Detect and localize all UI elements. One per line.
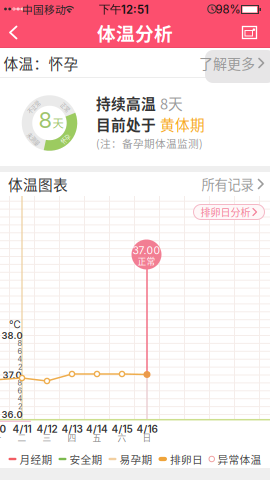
staticText: 黄体期 [160, 113, 205, 135]
staticText: 正常 [60, 103, 70, 111]
staticText: 排卵日分析 [200, 205, 250, 219]
staticText: 所有记录 [201, 174, 253, 194]
staticText: 4/11 [12, 423, 31, 435]
staticText: 98% [215, 3, 240, 16]
staticText: 4/16 [136, 423, 157, 435]
staticText: 异常体温 [217, 451, 261, 467]
staticText: 6 [17, 347, 22, 356]
staticText: 38.0 [1, 330, 22, 341]
button[interactable]: 所有记录 [201, 174, 264, 194]
staticText: 不正常 [26, 103, 41, 111]
staticText: 4/14 [86, 423, 108, 435]
staticText: 了解更多 [199, 53, 255, 73]
staticText: 月经期 [19, 451, 52, 467]
staticText: 排卵日 [170, 451, 203, 467]
staticText: 一 [0, 431, 1, 444]
staticText: 正常 [137, 255, 155, 267]
staticText: 日 [142, 431, 151, 444]
staticText: 下午12:51 [99, 2, 149, 17]
staticText: 三 [42, 431, 51, 444]
staticText: 安全期 [69, 451, 102, 467]
staticText: 五 [92, 431, 101, 444]
staticText: 体温：怀孕 [3, 52, 78, 74]
staticText: 持续高温 [96, 92, 156, 114]
staticText: 0 [0, 423, 6, 435]
staticText: 易孕期 [119, 451, 152, 467]
staticText: 8 [38, 107, 52, 133]
staticText: 六 [117, 431, 126, 444]
staticText: 未测量 [26, 135, 41, 143]
staticText: 4 [17, 355, 22, 364]
staticText: 4/15 [111, 423, 132, 435]
staticText: 体温图表 [8, 173, 68, 195]
staticText: 中国移动 [22, 1, 66, 17]
button[interactable]: 排卵日分析 [193, 204, 264, 219]
staticText: 天 [52, 114, 63, 131]
staticText: 37.00 [132, 244, 160, 257]
staticText: 4/12 [36, 423, 57, 435]
staticText: 4 [17, 394, 22, 403]
staticText: 8天 [160, 92, 183, 114]
staticText: 二 [17, 431, 26, 444]
staticText: 8 [17, 339, 22, 348]
staticText: 37.0 [2, 369, 21, 381]
staticText: ℃ [9, 318, 21, 331]
staticText: 怀孕 [60, 135, 70, 143]
staticText: 4/13 [61, 423, 82, 435]
button[interactable]: 了解更多 [199, 53, 265, 73]
button[interactable]: 导出记录 [234, 18, 270, 47]
staticText: 2 [18, 363, 22, 372]
staticText: 2 [18, 402, 22, 411]
staticText: 36.0 [1, 409, 22, 420]
staticText: 目前处于 [96, 113, 156, 135]
staticText: 6 [17, 386, 22, 395]
button[interactable]: 返回 [0, 18, 40, 47]
staticText: (注：备孕期体温监测) [96, 135, 203, 151]
staticText: 四 [67, 431, 76, 444]
staticText: 8 [17, 378, 22, 387]
staticText: 体温分析 [97, 19, 173, 46]
